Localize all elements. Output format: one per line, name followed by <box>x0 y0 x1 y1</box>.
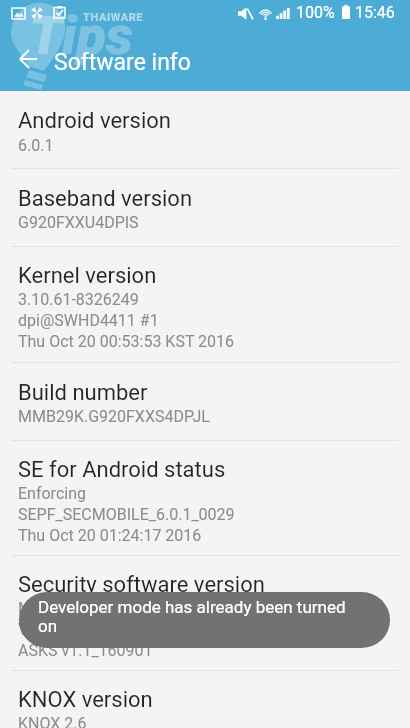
staticText: Android version <box>18 108 171 134</box>
staticText: SEPF_SECMOBILE_6.0.1_0029 <box>18 505 235 524</box>
staticText: Software info <box>54 49 191 76</box>
staticText: Thu Oct 20 01:24:17 2016 <box>18 526 202 545</box>
button[interactable]: Build number <box>0 363 410 440</box>
staticText: Kernel version <box>18 263 157 289</box>
button[interactable]: Android version <box>0 91 410 168</box>
staticText: Developer mode has already been turned o… <box>38 597 353 637</box>
button[interactable]: Security software version <box>0 556 410 670</box>
staticText: Enforcing <box>18 484 86 503</box>
staticText: Tips <box>29 4 133 67</box>
staticText: MMB29K.G920FXXS4DPJL <box>18 407 210 426</box>
staticText: Build number <box>18 380 148 406</box>
button[interactable]: Kernel version <box>0 247 410 362</box>
staticText: VPN v1.4 Release 6.0 <box>18 620 170 639</box>
staticText: ASKS v1.1_160901 <box>18 641 153 660</box>
staticText: KNOX 2.6 <box>18 714 87 728</box>
staticText: Baseband version <box>18 186 193 212</box>
staticText: KNOX version <box>18 687 153 713</box>
staticText: 6.0.1 <box>18 136 54 155</box>
button[interactable]: KNOX version <box>0 671 410 728</box>
staticText: Thu Oct 20 00:53:53 KST 2016 <box>18 332 235 351</box>
staticText: dpi@SWHD4411 #1 <box>18 311 159 330</box>
staticText: 15:46 <box>355 3 395 22</box>
button[interactable]: Baseband version <box>0 169 410 246</box>
staticText: THAIWARE <box>83 11 144 24</box>
staticText: 3.10.61-8326249 <box>18 290 139 309</box>
staticText: MDF v3.1 Release 6.0 <box>18 599 172 618</box>
button[interactable]: Navigate up <box>6 37 50 81</box>
staticText: G920FXXU4DPIS <box>18 213 139 232</box>
staticText: SE for Android status <box>18 457 226 483</box>
staticText: 100% <box>296 3 335 22</box>
button[interactable]: SE for Android status <box>0 441 410 555</box>
staticText: Security software version <box>18 572 265 598</box>
